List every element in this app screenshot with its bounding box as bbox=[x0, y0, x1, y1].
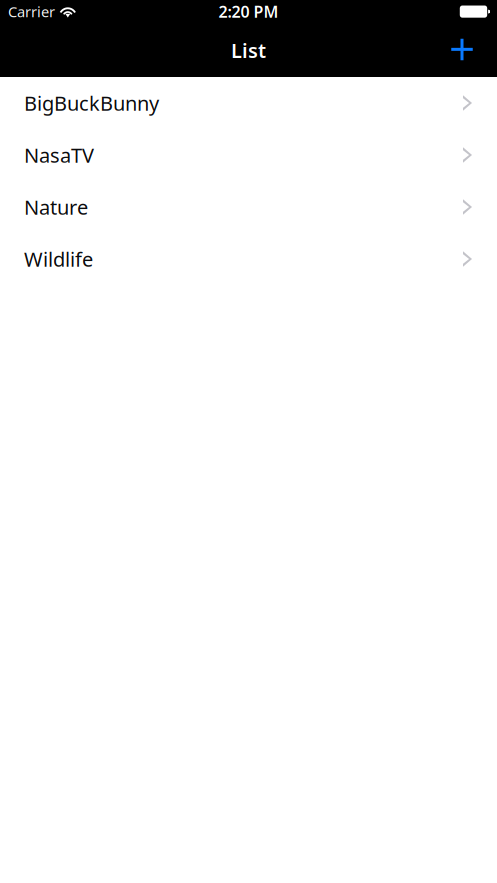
staticText: BigBuckBunny bbox=[24, 90, 159, 116]
staticText: Nature bbox=[24, 194, 88, 220]
staticText: Wildlife bbox=[24, 246, 93, 272]
button[interactable]: Nature bbox=[0, 181, 497, 233]
staticText: Carrier bbox=[8, 2, 55, 21]
button[interactable]: BigBuckBunny bbox=[0, 77, 497, 129]
button[interactable]: Wildlife bbox=[0, 233, 497, 285]
staticText: NasaTV bbox=[24, 142, 94, 168]
staticText: List bbox=[231, 37, 266, 64]
staticText: 2:20 PM bbox=[218, 1, 278, 22]
button[interactable]: Add bbox=[440, 29, 484, 73]
button[interactable]: NasaTV bbox=[0, 129, 497, 181]
